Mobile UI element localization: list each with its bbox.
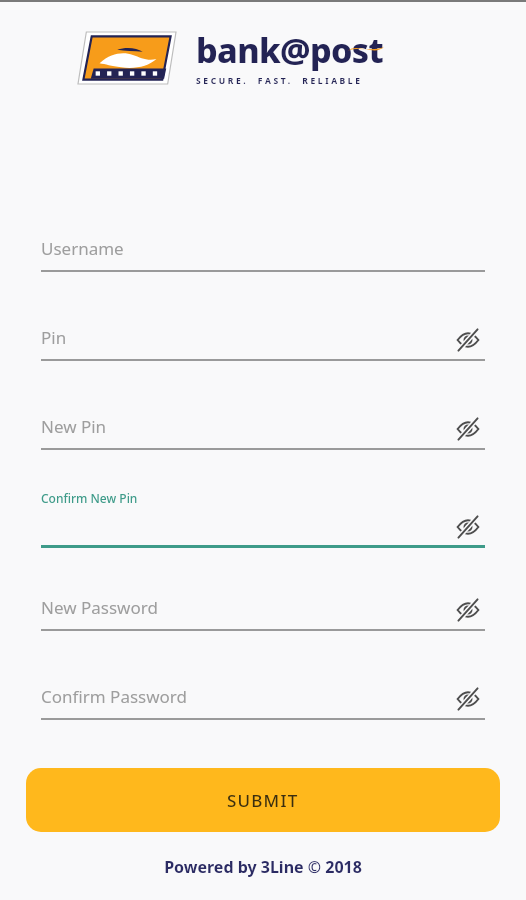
button[interactable]: Username bbox=[41, 214, 485, 272]
staticText: Username bbox=[41, 237, 124, 260]
button[interactable]: Toggle Confirm New Pin visibility bbox=[451, 510, 485, 544]
staticText: Confirm Password bbox=[41, 685, 187, 708]
staticText: New Password bbox=[41, 596, 158, 619]
staticText: Confirm New Pin bbox=[41, 490, 138, 506]
button[interactable]: Toggle Pin visibility bbox=[451, 323, 485, 357]
button[interactable]: New Password bbox=[41, 573, 485, 631]
staticText: bank@post bbox=[196, 27, 384, 73]
button[interactable]: Confirm New Pin bbox=[41, 490, 485, 548]
staticText: Powered by 3Line © 2018 bbox=[0, 856, 526, 878]
button[interactable]: Toggle Confirm Password visibility bbox=[451, 682, 485, 716]
button[interactable]: Toggle New Pin visibility bbox=[451, 412, 485, 446]
button[interactable]: New Pin bbox=[41, 392, 485, 450]
staticText: Pin bbox=[41, 326, 67, 349]
staticText: SUBMIT bbox=[227, 789, 299, 812]
staticText: New Pin bbox=[41, 415, 107, 438]
button[interactable]: Pin bbox=[41, 303, 485, 361]
staticText: SECURE. FAST. RELIABLE bbox=[196, 75, 363, 87]
button[interactable]: Confirm Password bbox=[41, 662, 485, 720]
button[interactable]: SUBMIT bbox=[26, 768, 500, 832]
button[interactable]: Toggle New Password visibility bbox=[451, 593, 485, 627]
